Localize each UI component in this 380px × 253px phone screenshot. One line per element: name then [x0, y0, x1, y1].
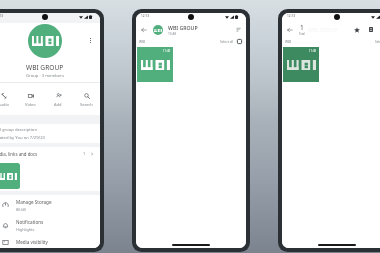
button[interactable]: Add [44, 83, 72, 115]
button[interactable]: Audio [0, 83, 17, 115]
button[interactable]: More options [85, 35, 96, 46]
staticText: Group · 3 members [26, 73, 65, 79]
button[interactable]: Back [284, 24, 295, 35]
button[interactable]: Video [17, 83, 44, 115]
button[interactable]: Search [72, 83, 100, 115]
button[interactable]: Delete [365, 24, 376, 35]
staticText: 1 [300, 23, 304, 32]
staticText: 12:13 [141, 14, 150, 18]
button[interactable]: Back [138, 24, 149, 35]
staticText: Total [299, 32, 305, 36]
staticText: WBI [285, 40, 292, 44]
staticText: Audio [0, 102, 9, 107]
staticText: Add group description [0, 127, 37, 133]
button[interactable]: 11:48 [283, 47, 319, 82]
staticText: WBI [139, 40, 146, 44]
staticText: WBI GROUP [168, 24, 198, 31]
button[interactable]: Media visibility [0, 235, 100, 248]
button[interactable]: Add group description [0, 124, 100, 143]
staticText: Media, links and docs [0, 151, 38, 157]
staticText: Select all [220, 40, 234, 44]
staticText: 1 [83, 151, 86, 156]
button[interactable]: Sort [234, 25, 243, 34]
staticText: 86 kB [16, 207, 26, 212]
button[interactable]: Star [351, 24, 362, 35]
staticText: Manage Storage [16, 199, 52, 205]
staticText: Media visibility [16, 239, 48, 245]
staticText: Select all [375, 40, 380, 44]
button[interactable] [0, 163, 20, 189]
staticText: Search [80, 102, 93, 107]
button[interactable]: Notifications [0, 215, 100, 235]
staticText: Video [25, 102, 36, 107]
staticText: Notifications [16, 219, 44, 225]
button[interactable]: 11:48 [137, 47, 173, 82]
staticText: 10:48 [168, 32, 177, 36]
button[interactable]: Select all [219, 39, 243, 44]
staticText: WBI GROUP [26, 63, 64, 72]
staticText: 12:13 [287, 14, 296, 18]
staticText: Add [54, 102, 62, 107]
staticText: 12:13 [0, 14, 4, 18]
staticText: Highlights [16, 227, 35, 232]
staticText: 11:48 [163, 49, 171, 53]
staticText: Created by You on 7/29/23 [0, 135, 45, 141]
staticText: 11:48 [309, 49, 317, 53]
button[interactable]: Media, links and docs [0, 147, 100, 160]
button[interactable]: Manage Storage [0, 195, 100, 215]
